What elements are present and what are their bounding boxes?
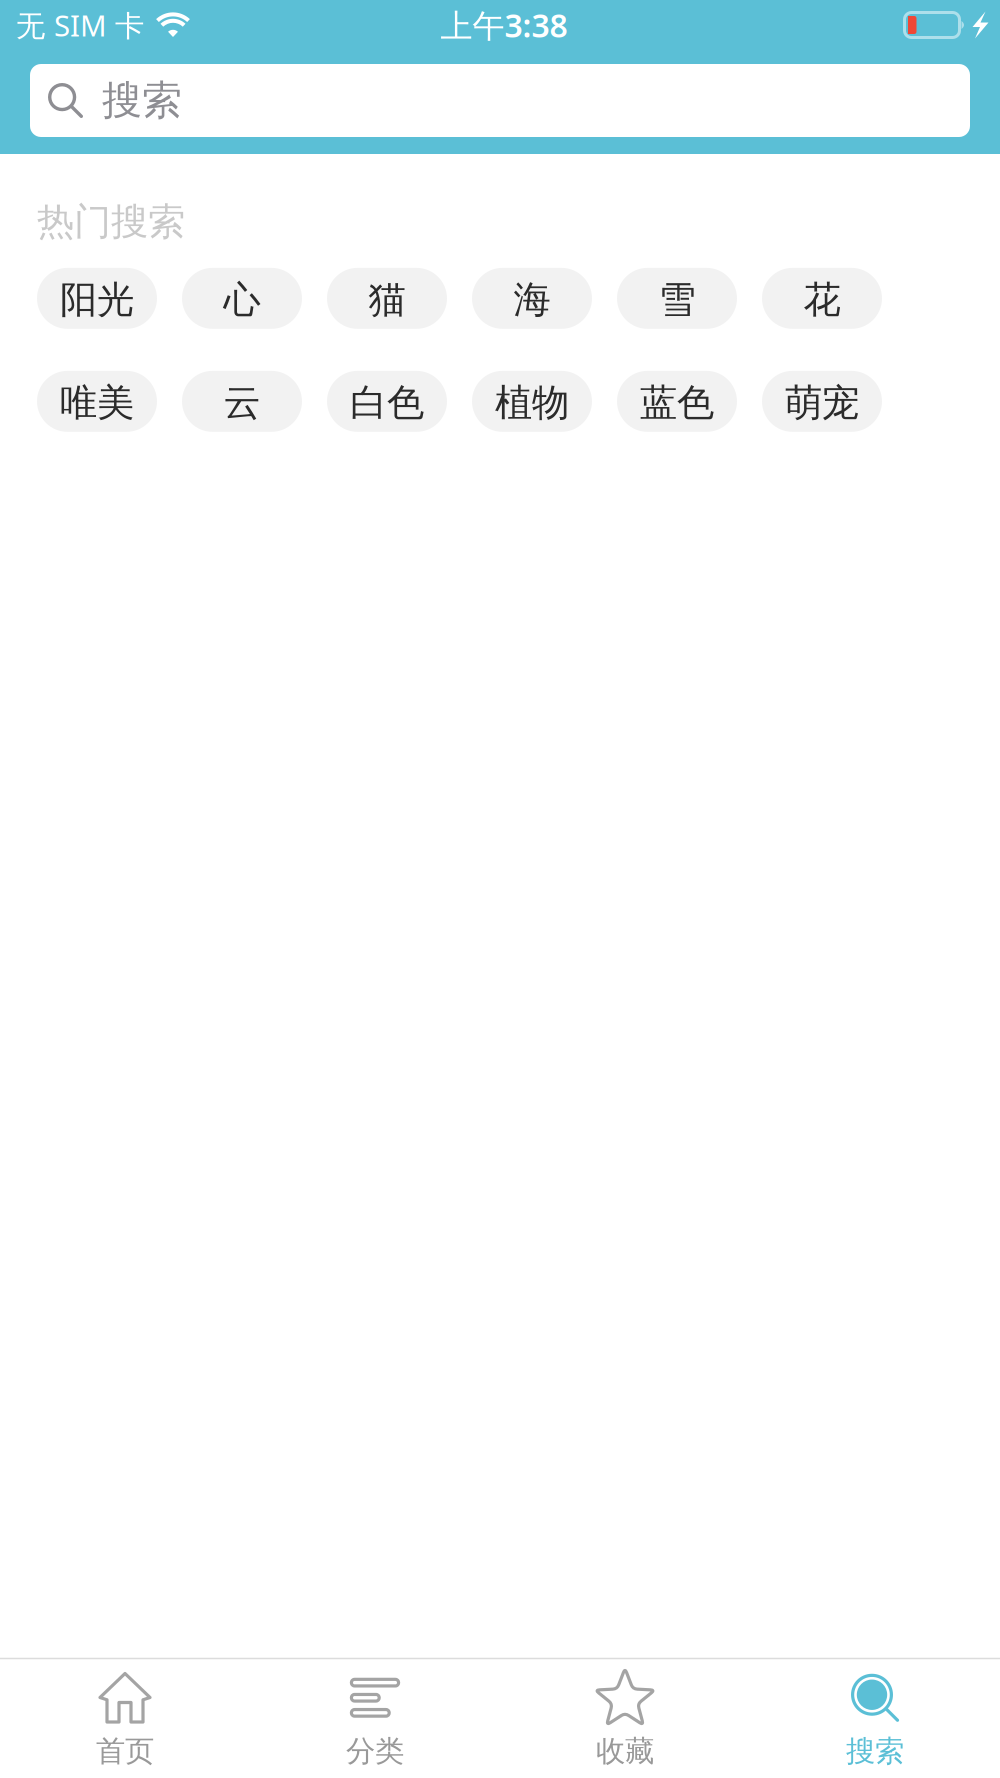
staticText: 搜索 (846, 1733, 904, 1769)
staticText: 阳光 (60, 277, 134, 323)
staticText: 收藏 (596, 1733, 654, 1769)
staticText: 首页 (96, 1733, 154, 1769)
button[interactable]: 猫 (327, 268, 447, 329)
button[interactable]: 搜索 (30, 64, 970, 137)
staticText: 云 (223, 380, 260, 426)
staticText: 唯美 (60, 380, 134, 426)
button[interactable]: 分类 (250, 1659, 500, 1778)
button[interactable]: 雪 (617, 268, 737, 329)
staticText: 热门搜索 (37, 199, 185, 245)
button[interactable]: 萌宠 (762, 371, 882, 432)
staticText: 蓝色 (640, 380, 714, 426)
staticText: 分类 (346, 1733, 404, 1769)
button[interactable]: 收藏 (500, 1659, 750, 1778)
staticText: 上午3:38 (440, 4, 567, 46)
staticText: 心 (223, 277, 260, 323)
button[interactable]: 花 (762, 268, 882, 329)
button[interactable]: 阳光 (37, 268, 157, 329)
staticText: 雪 (658, 277, 695, 323)
button[interactable]: 云 (182, 371, 302, 432)
staticText: 植物 (495, 380, 569, 426)
staticText: 花 (803, 277, 840, 323)
button[interactable]: 海 (472, 268, 592, 329)
staticText: 无 SIM 卡 (16, 5, 144, 44)
button[interactable]: 心 (182, 268, 302, 329)
staticText: 萌宠 (785, 380, 859, 426)
button[interactable]: 搜索 (750, 1659, 1000, 1778)
button[interactable]: 白色 (327, 371, 447, 432)
staticText: 白色 (350, 380, 424, 426)
staticText: 猫 (368, 277, 405, 323)
button[interactable]: 首页 (0, 1659, 250, 1778)
staticText: 搜索 (102, 76, 182, 125)
button[interactable]: 植物 (472, 371, 592, 432)
button[interactable]: 唯美 (37, 371, 157, 432)
staticText: 海 (513, 277, 550, 323)
button[interactable]: 蓝色 (617, 371, 737, 432)
